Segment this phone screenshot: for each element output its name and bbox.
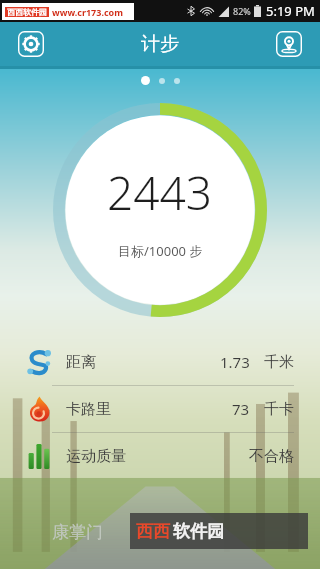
- staticText: 千米: [264, 353, 294, 372]
- staticText: 西西软件园: [7, 7, 47, 17]
- button[interactable]: 距离: [26, 339, 294, 385]
- staticText: 软件园: [173, 521, 224, 542]
- button[interactable]: 卡路里: [26, 386, 294, 432]
- staticText: 5:19 PM: [266, 2, 315, 20]
- staticText: 康掌门: [52, 522, 103, 543]
- staticText: 卡路里: [66, 400, 111, 419]
- staticText: 1.73: [220, 352, 250, 372]
- staticText: 73: [232, 399, 250, 419]
- staticText: 不合格: [249, 447, 294, 466]
- staticText: 运动质量: [66, 447, 126, 466]
- staticText: 2443: [107, 161, 213, 224]
- staticText: 千卡: [264, 400, 294, 419]
- button[interactable]: 运动质量: [26, 433, 294, 479]
- staticText: 计步: [141, 32, 179, 56]
- button[interactable]: Location: [276, 31, 302, 57]
- staticText: 82%: [233, 5, 251, 17]
- staticText: 距离: [66, 353, 96, 372]
- button[interactable]: Settings: [18, 31, 44, 57]
- staticText: 西西: [136, 521, 170, 542]
- staticText: www.cr173.com: [52, 6, 123, 18]
- staticText: 目标/10000 步: [118, 242, 203, 260]
